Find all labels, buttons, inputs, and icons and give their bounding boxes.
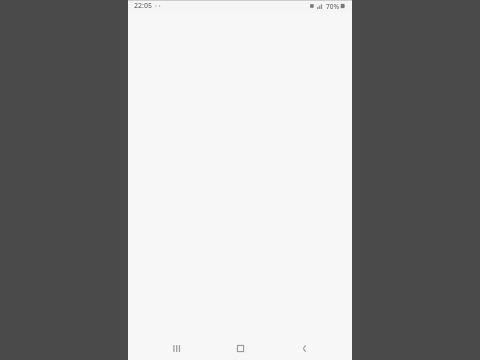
button[interactable]: Recents (165, 337, 187, 359)
button[interactable]: Home (229, 337, 251, 359)
button[interactable]: Back (293, 337, 315, 359)
staticText: 22:05 (134, 1, 152, 11)
staticText: 70% (326, 2, 339, 11)
